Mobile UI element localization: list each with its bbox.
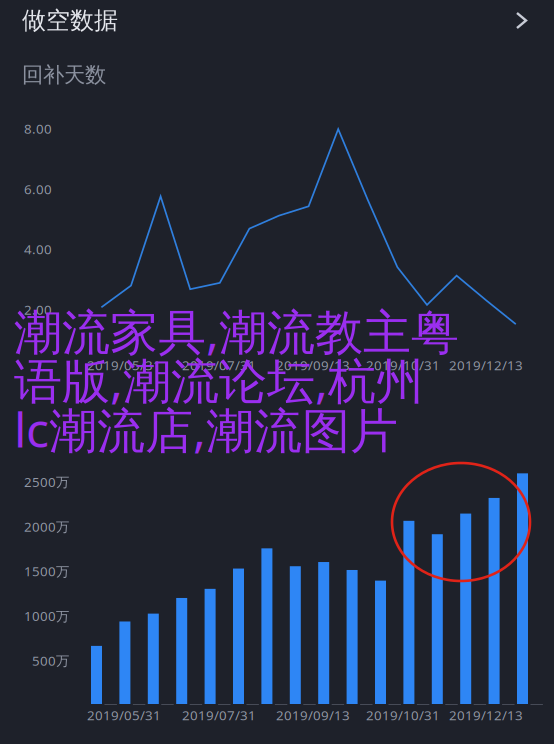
staticText: 2.00 (24, 301, 52, 318)
staticText: 2000万 (24, 518, 69, 535)
staticText: 2019/07/31 (182, 356, 256, 374)
staticText: 2019/12/13 (449, 706, 523, 724)
staticText: 2019/10/31 (366, 706, 440, 724)
staticText: 做空数据 (22, 6, 118, 35)
staticText: 2019/05/31 (87, 706, 161, 724)
staticText: 4.00 (24, 240, 52, 258)
staticText: 500万 (32, 652, 69, 669)
staticText: 1000万 (24, 607, 69, 625)
staticText: 8.00 (24, 120, 52, 137)
staticText: 2019/10/31 (366, 356, 440, 374)
staticText: 回补天数 (22, 62, 106, 88)
staticText: 2019/09/13 (276, 706, 350, 724)
staticText: 2019/07/31 (182, 706, 256, 724)
button[interactable]: 做空数据 (0, 0, 554, 41)
staticText: 2019/12/13 (449, 356, 523, 374)
staticText: 1500万 (24, 562, 69, 580)
staticText: 2500万 (24, 473, 69, 491)
staticText: 2019/09/13 (276, 356, 350, 374)
staticText: 6.00 (24, 180, 52, 198)
staticText: 语版,潮流论坛,杭州 (14, 348, 424, 412)
staticText: 2019/05/31 (87, 356, 161, 374)
staticText: 潮流家具,潮流教主粤 (14, 299, 459, 363)
staticText: lc潮流店,潮流图片 (14, 397, 398, 461)
